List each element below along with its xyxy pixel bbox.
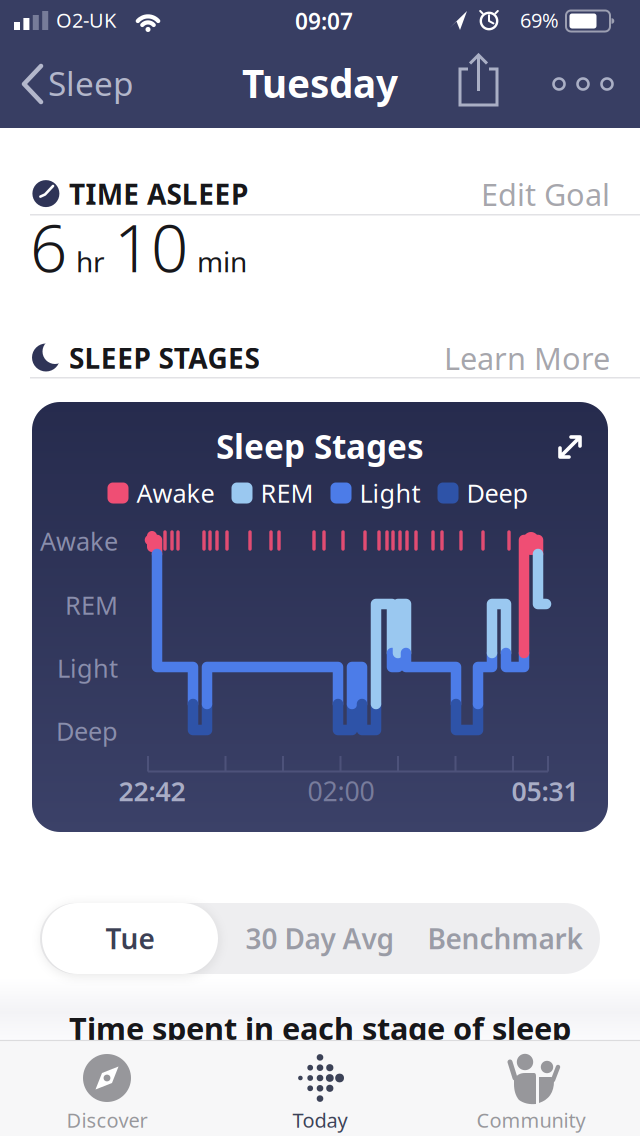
button[interactable]: Benchmark	[412, 903, 598, 974]
button[interactable]	[430, 55, 527, 113]
staticText: Awake	[40, 524, 118, 558]
staticText: SLEEP STAGES	[69, 339, 259, 377]
staticText: 09:07	[295, 6, 353, 36]
staticText: Light	[359, 476, 420, 510]
button[interactable]: Edit Goal	[0, 0, 640, 1136]
staticText: Sleep	[48, 61, 134, 105]
button[interactable]: Discover	[54, 1040, 160, 1136]
staticText: 02:00	[307, 773, 374, 809]
button[interactable]	[549, 74, 617, 94]
button[interactable]: Today	[267, 1040, 373, 1136]
staticText: Deep	[466, 476, 528, 510]
staticText: Tue	[105, 920, 154, 957]
button[interactable]: Tue	[42, 903, 218, 974]
staticText: 6	[30, 204, 67, 290]
staticText: Tuesday	[242, 57, 398, 109]
staticText: min	[197, 243, 247, 280]
button[interactable]	[555, 432, 585, 462]
button[interactable]: Learn More	[0, 0, 640, 1136]
staticText: 30 Day Avg	[245, 920, 394, 957]
staticText: TIME ASLEEP	[69, 175, 248, 213]
staticText: Awake	[136, 476, 214, 510]
staticText: Sleep Stages	[216, 424, 424, 468]
staticText: Today	[292, 1107, 347, 1133]
staticText: Discover	[66, 1107, 147, 1133]
button[interactable]: Sleep	[0, 0, 640, 128]
staticText: 69%	[520, 7, 559, 33]
staticText: Light	[57, 651, 118, 685]
staticText: Time spent in each stage of sleep	[69, 1008, 571, 1048]
button[interactable]: Community	[478, 1040, 584, 1136]
staticText: hr	[76, 243, 105, 280]
staticText: Learn More	[444, 338, 610, 378]
staticText: 10	[114, 204, 188, 290]
staticText: O2-UK	[56, 7, 116, 33]
staticText: REM	[260, 476, 313, 510]
staticText: REM	[65, 588, 118, 622]
staticText: Benchmark	[427, 920, 582, 957]
staticText: Deep	[56, 714, 118, 748]
button[interactable]: 30 Day Avg	[227, 903, 413, 974]
staticText: Edit Goal	[481, 174, 610, 214]
staticText: 22:42	[118, 773, 185, 809]
staticText: 05:31	[511, 773, 578, 809]
staticText: Community	[476, 1107, 585, 1133]
